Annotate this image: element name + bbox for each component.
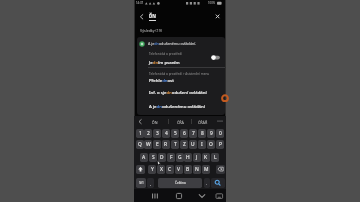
staticText: L xyxy=(214,154,217,161)
staticText: K xyxy=(204,154,208,161)
button[interactable]: U xyxy=(189,140,197,149)
button[interactable]: ČŘÁ xyxy=(169,117,191,127)
staticText: 3 xyxy=(156,130,159,137)
button[interactable]: E xyxy=(153,140,161,149)
button[interactable]: A xyxy=(140,153,148,162)
button[interactable]: L xyxy=(211,153,219,162)
staticText: 9 xyxy=(210,130,213,137)
button[interactable]: O xyxy=(207,140,215,149)
staticText: F xyxy=(170,154,173,161)
staticText: . xyxy=(206,181,208,186)
button[interactable]: ĎN xyxy=(144,117,166,127)
staticText: Telefonická a prostředí xyxy=(149,52,182,56)
button[interactable]: 4 xyxy=(162,129,170,138)
staticText: ĎN xyxy=(152,120,158,125)
button[interactable]: 0 xyxy=(216,129,224,138)
button[interactable] xyxy=(137,100,225,114)
staticText: E xyxy=(156,141,159,148)
button[interactable]: R xyxy=(162,140,170,149)
button[interactable] xyxy=(137,37,225,49)
button[interactable]: 7 xyxy=(189,129,197,138)
button[interactable]: !#1 xyxy=(136,178,146,188)
staticText: T xyxy=(174,141,177,148)
button[interactable]: B xyxy=(184,165,192,174)
staticText: D xyxy=(160,154,164,161)
button[interactable]: ČŘÁŘ xyxy=(192,117,214,127)
staticText: M xyxy=(204,166,209,173)
button[interactable] xyxy=(215,192,224,200)
staticText: ČŘÁ xyxy=(177,120,184,125)
staticText: V xyxy=(177,166,181,173)
staticText: Inf. o sjednodušení ovládání xyxy=(149,89,207,95)
button[interactable]: 6 xyxy=(180,129,188,138)
button[interactable] xyxy=(137,68,225,86)
button[interactable]: H xyxy=(184,153,192,162)
staticText: 7 xyxy=(192,130,195,137)
button[interactable] xyxy=(137,51,225,67)
button[interactable]: J xyxy=(193,153,201,162)
staticText: Z xyxy=(183,141,186,148)
staticText: P xyxy=(219,141,222,148)
button[interactable] xyxy=(216,165,225,174)
staticText: 6 xyxy=(183,130,186,137)
staticText: 14:37 xyxy=(136,1,144,5)
button[interactable] xyxy=(197,191,207,201)
button[interactable]: V xyxy=(175,165,183,174)
staticText: G xyxy=(178,154,182,161)
button[interactable] xyxy=(137,86,225,100)
button[interactable]: . xyxy=(204,178,210,188)
staticText: , xyxy=(150,181,152,186)
staticText: R xyxy=(164,141,168,148)
button[interactable] xyxy=(136,165,145,174)
staticText: 8 xyxy=(201,130,204,137)
staticText: O xyxy=(209,141,213,148)
staticText: 1 xyxy=(139,130,142,137)
staticText: Čeština xyxy=(175,181,186,185)
staticText: N xyxy=(195,166,199,173)
staticText: X xyxy=(160,166,163,173)
staticText: A jednodušenému ovládání. xyxy=(148,41,197,46)
staticText: I xyxy=(201,141,203,148)
staticText: !#1 xyxy=(139,181,144,185)
button[interactable] xyxy=(211,178,225,188)
staticText: 4 xyxy=(165,130,168,137)
button[interactable]: C xyxy=(166,165,174,174)
button[interactable]: Čeština xyxy=(158,178,202,188)
button[interactable]: P xyxy=(216,140,224,149)
button[interactable]: , xyxy=(147,178,154,188)
staticText: 100% xyxy=(208,1,216,5)
button[interactable]: Z xyxy=(180,140,188,149)
button[interactable] xyxy=(174,191,184,201)
button[interactable]: W xyxy=(144,140,152,149)
button[interactable]: Q xyxy=(136,140,144,149)
button[interactable]: I xyxy=(198,140,206,149)
button[interactable]: M xyxy=(202,165,210,174)
button[interactable] xyxy=(137,12,146,21)
button[interactable] xyxy=(150,191,160,201)
button[interactable]: 8 xyxy=(198,129,206,138)
button[interactable]: N xyxy=(193,165,201,174)
button[interactable]: 9 xyxy=(207,129,215,138)
button[interactable]: 2 xyxy=(144,129,152,138)
button[interactable]: K xyxy=(202,153,210,162)
staticText: 2 xyxy=(147,130,150,137)
staticText: C xyxy=(168,166,172,173)
button[interactable]: D xyxy=(158,153,166,162)
staticText: 0 xyxy=(219,130,222,137)
button[interactable]: 3 xyxy=(153,129,161,138)
button[interactable]: S xyxy=(149,153,157,162)
staticText: S xyxy=(152,154,155,161)
staticText: Přehlednost xyxy=(149,77,174,83)
staticText: Y xyxy=(151,166,154,173)
staticText: 5 xyxy=(174,130,177,137)
button[interactable]: X xyxy=(157,165,165,174)
button[interactable] xyxy=(213,12,222,21)
button[interactable]: 5 xyxy=(171,129,179,138)
button[interactable]: 1 xyxy=(136,129,144,138)
button[interactable]: Y xyxy=(148,165,156,174)
button[interactable]: G xyxy=(176,153,184,162)
button[interactable]: T xyxy=(171,140,179,149)
button[interactable]: F xyxy=(167,153,175,162)
staticText: W xyxy=(146,141,151,148)
staticText: A xyxy=(142,154,146,161)
